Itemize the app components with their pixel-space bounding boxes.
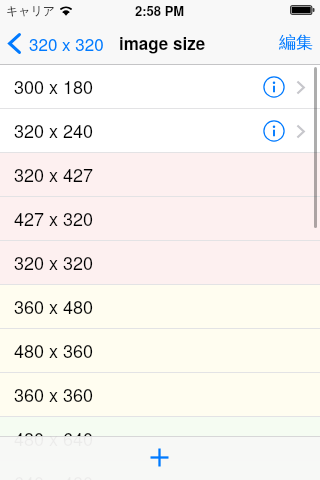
staticText: キャリア: [6, 3, 56, 18]
staticText: 360 x 360: [14, 381, 94, 407]
staticText: 320 x 320: [29, 31, 104, 55]
button[interactable]: 360 x 480: [0, 285, 320, 329]
button[interactable]: 320 x 320: [0, 27, 112, 59]
staticText: 427 x 320: [14, 205, 94, 231]
button[interactable]: 480 x 360: [0, 329, 320, 373]
button[interactable]: 320 x 240: [0, 109, 320, 153]
staticText: 300 x 180: [14, 73, 94, 99]
staticText: 360 x 480: [14, 293, 94, 319]
button[interactable]: 480 x 640: [0, 417, 320, 461]
button[interactable]: 640 x 480: [0, 461, 320, 480]
staticText: 480 x 360: [14, 337, 94, 363]
staticText: 320 x 240: [14, 117, 94, 143]
staticText: 320 x 320: [14, 249, 94, 275]
button[interactable]: 320 x 320: [0, 241, 320, 285]
button[interactable]: 360 x 360: [0, 373, 320, 417]
staticText: image size: [119, 31, 206, 55]
button[interactable]: 300 x 180: [0, 65, 320, 109]
staticText: 480 x 640: [14, 425, 94, 451]
button[interactable]: 427 x 320: [0, 197, 320, 241]
button[interactable]: 320 x 427: [0, 153, 320, 197]
staticText: 320 x 427: [14, 161, 94, 187]
staticText: 編集: [279, 32, 313, 53]
button[interactable]: 編集: [267, 26, 320, 59]
button[interactable]: Add: [137, 435, 181, 479]
staticText: 2:58 PM: [135, 1, 185, 20]
